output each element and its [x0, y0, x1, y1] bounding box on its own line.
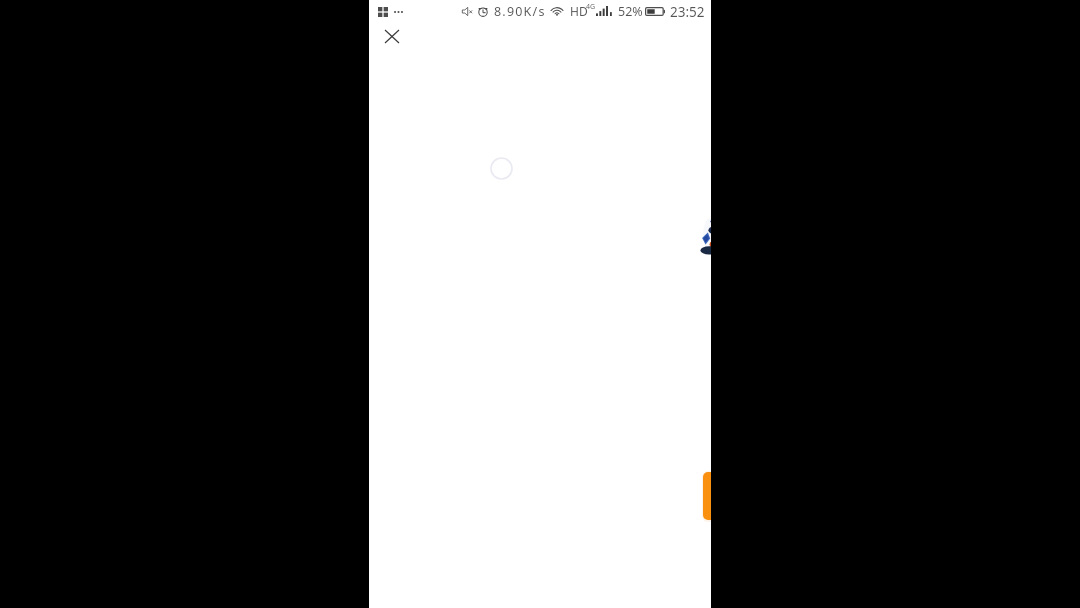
staticText: 23:52 — [670, 3, 705, 21]
staticText: 52% — [618, 3, 643, 20]
button[interactable]: Side tab — [703, 472, 711, 520]
button[interactable]: Close — [379, 23, 405, 49]
staticText: 4G — [586, 2, 596, 12]
staticText: HD — [570, 3, 588, 19]
staticText: 8.90K/s — [494, 3, 546, 20]
button[interactable]: Assistant — [697, 216, 711, 256]
